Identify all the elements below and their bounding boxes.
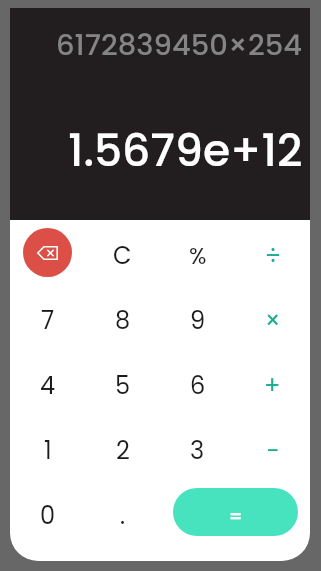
staticText: × — [265, 304, 281, 338]
staticText: 9 — [190, 304, 206, 338]
staticText: 4 — [40, 369, 56, 403]
staticText: ÷ — [265, 239, 281, 273]
staticText: . — [120, 499, 126, 533]
button[interactable]: 4 — [10, 349, 85, 414]
button[interactable]: + — [235, 349, 310, 414]
button[interactable]: 6 — [160, 349, 235, 414]
button[interactable]: 8 — [85, 284, 160, 349]
button[interactable] — [10, 220, 85, 284]
staticText: 1.5679e+12 — [68, 120, 303, 182]
button[interactable]: × — [235, 284, 310, 349]
staticText: 1 — [44, 434, 52, 468]
button[interactable] — [23, 228, 72, 277]
button[interactable]: = — [160, 479, 310, 544]
staticText: % — [189, 240, 207, 272]
staticText: 7 — [41, 304, 55, 338]
button[interactable]: . — [85, 479, 160, 544]
staticText: − — [266, 434, 280, 468]
button[interactable]: 7 — [10, 284, 85, 349]
button[interactable]: 3 — [160, 414, 235, 479]
button[interactable]: 9 — [160, 284, 235, 349]
staticText: 2 — [116, 434, 130, 468]
button[interactable]: % — [160, 220, 235, 284]
staticText: 5 — [115, 369, 131, 403]
button[interactable]: 0 — [10, 479, 85, 544]
button[interactable]: C — [85, 220, 160, 284]
staticText: 6 — [190, 369, 206, 403]
staticText: C — [113, 239, 132, 273]
staticText: 8 — [115, 304, 131, 338]
button[interactable]: 2 — [85, 414, 160, 479]
staticText: + — [264, 369, 281, 403]
button[interactable]: 1 — [10, 414, 85, 479]
staticText: 3 — [190, 434, 205, 468]
button[interactable]: ÷ — [235, 220, 310, 284]
staticText: 0 — [40, 499, 56, 533]
staticText: 6172839450×254 — [56, 25, 303, 66]
button[interactable]: 5 — [85, 349, 160, 414]
button[interactable]: = — [173, 488, 298, 536]
button[interactable]: − — [235, 414, 310, 479]
staticText: = — [229, 504, 243, 529]
